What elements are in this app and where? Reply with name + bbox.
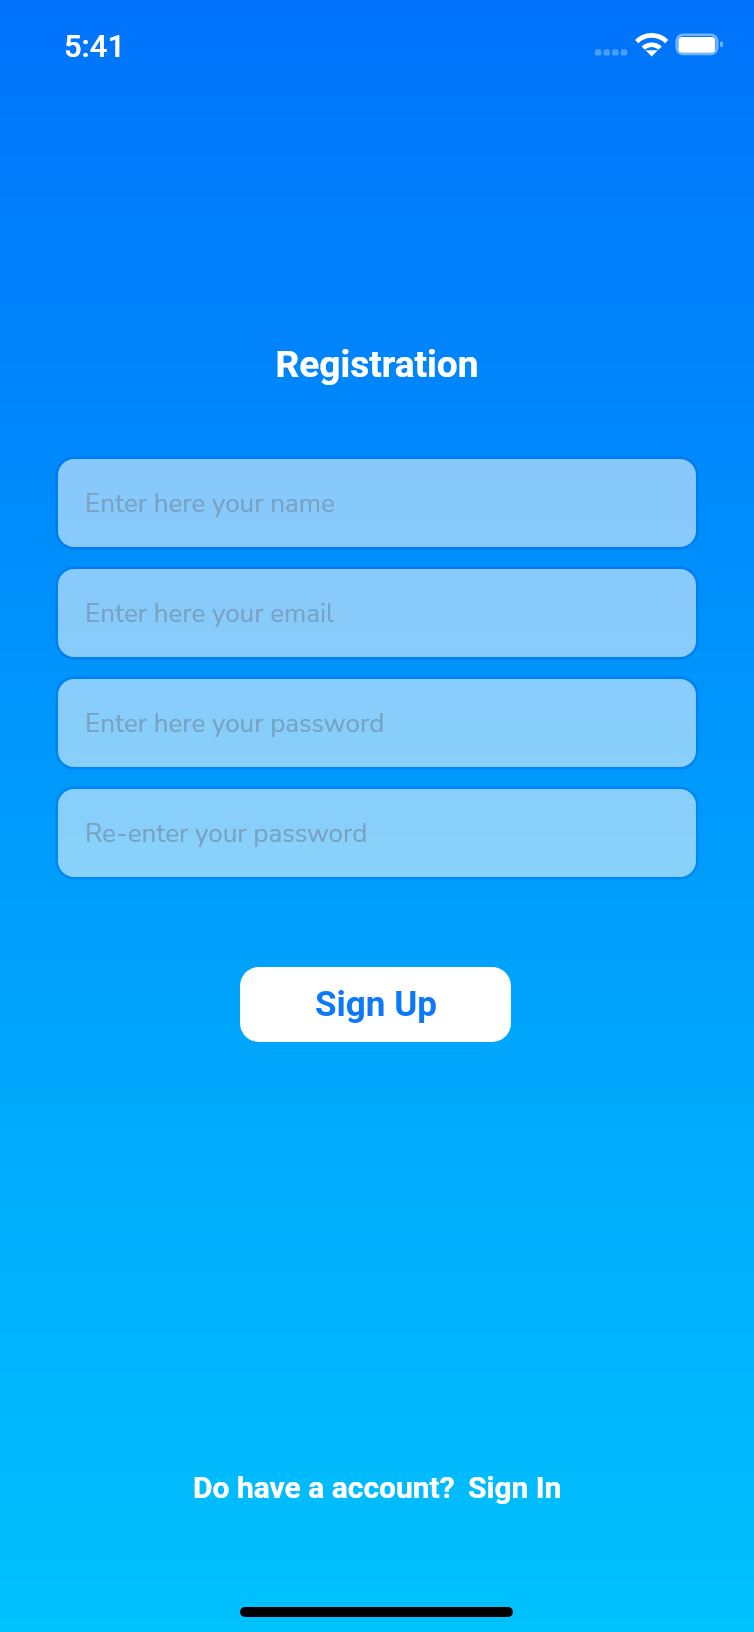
button[interactable]: Enter here your email bbox=[58, 569, 696, 657]
button[interactable]: Enter here your password bbox=[58, 679, 696, 767]
staticText: Do have a account? bbox=[193, 1470, 455, 1505]
staticText: Re-enter your password bbox=[85, 816, 368, 851]
staticText: Sign In bbox=[468, 1470, 562, 1505]
other: Wi-Fi bbox=[630, 30, 674, 60]
staticText: Registration bbox=[0, 343, 754, 386]
button[interactable]: Re-enter your password bbox=[58, 789, 696, 877]
button[interactable]: Sign In bbox=[468, 1470, 562, 1505]
staticText: Enter here your email bbox=[85, 596, 334, 631]
staticText: 5:41 bbox=[64, 28, 126, 64]
staticText: Enter here your name bbox=[85, 486, 335, 521]
other: Battery bbox=[673, 31, 725, 58]
button[interactable]: Sign Up bbox=[240, 967, 511, 1042]
button[interactable]: Enter here your name bbox=[58, 459, 696, 547]
staticText: Sign Up bbox=[315, 984, 437, 1025]
staticText: Enter here your password bbox=[85, 706, 385, 741]
